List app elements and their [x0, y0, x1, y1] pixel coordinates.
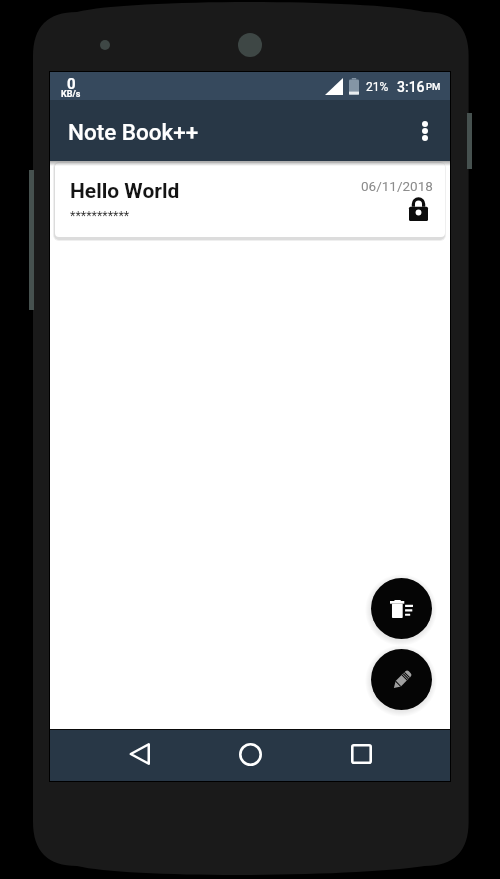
- staticText: 06/11/2018: [361, 178, 433, 194]
- button[interactable]: Home: [226, 730, 274, 778]
- staticText: PM: [426, 81, 441, 92]
- staticText: ***********: [70, 208, 130, 223]
- button[interactable]: Back: [115, 730, 163, 778]
- staticText: 0: [67, 75, 76, 93]
- staticText: KB/s: [61, 89, 81, 100]
- staticText: 21%: [366, 80, 389, 94]
- button[interactable]: More options: [401, 107, 449, 155]
- staticText: Hello World: [70, 179, 180, 204]
- button[interactable]: Hello World: [55, 163, 445, 237]
- staticText: Note Book++: [68, 119, 199, 145]
- button[interactable]: Delete notes: [371, 578, 432, 639]
- staticText: 3:16: [397, 79, 425, 95]
- button[interactable]: Recent apps: [337, 730, 385, 778]
- button[interactable]: New note: [371, 649, 432, 710]
